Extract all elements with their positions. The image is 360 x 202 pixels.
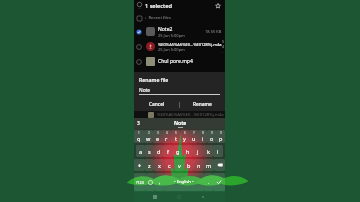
button[interactable]: Cancel xyxy=(134,99,179,110)
staticText: 54.97 KB xyxy=(222,39,225,54)
button[interactable]: Clipboard xyxy=(135,120,142,127)
button[interactable]: 1 xyxy=(134,130,144,143)
button[interactable]: Backspace xyxy=(214,159,225,171)
staticText: Chul pore.mp4 xyxy=(158,58,193,65)
staticText: • English • xyxy=(174,179,194,185)
other: Add to favourites xyxy=(215,3,221,9)
button[interactable]: • English • xyxy=(164,173,204,191)
staticText: 8 xyxy=(202,131,204,135)
button[interactable]: Chul pore.mp4 xyxy=(134,54,225,69)
staticText: %E0%A5%A6%E0…%E0128%j.m4a xyxy=(158,42,222,47)
staticText: 6 xyxy=(184,131,186,135)
staticText: w xyxy=(146,135,151,142)
button[interactable]: m xyxy=(204,159,214,171)
staticText: r xyxy=(165,135,168,142)
button[interactable]: Select all xyxy=(134,0,225,12)
staticText: k xyxy=(207,148,210,155)
button[interactable]: x xyxy=(154,159,164,171)
staticText: . xyxy=(208,179,210,185)
staticText: Note2 xyxy=(158,26,173,33)
staticText: c xyxy=(168,162,171,169)
staticText: 4 xyxy=(166,131,168,135)
staticText: 25 Jun 5:00pm xyxy=(158,33,185,38)
staticText: Cancel xyxy=(149,101,165,108)
staticText: 3 xyxy=(137,120,140,127)
staticText: g xyxy=(176,148,180,155)
button[interactable]: Enter xyxy=(213,173,225,191)
staticText: j xyxy=(197,148,199,155)
button[interactable]: 8 xyxy=(198,130,207,143)
staticText: l xyxy=(217,148,219,155)
staticText: › Recent files xyxy=(145,15,171,21)
button[interactable]: 0 xyxy=(216,130,225,143)
staticText: n xyxy=(197,162,201,169)
button[interactable]: Rename xyxy=(180,99,225,110)
button[interactable]: g xyxy=(173,145,183,157)
button[interactable]: k xyxy=(203,145,213,157)
staticText: u xyxy=(192,135,196,142)
staticText: 25 Jun 5:00pm xyxy=(158,47,185,52)
staticText: b xyxy=(187,162,191,169)
staticText: h xyxy=(186,148,190,155)
button[interactable]: Emoji xyxy=(146,173,155,191)
staticText: Note xyxy=(139,87,150,94)
staticText: s xyxy=(148,148,151,155)
staticText: m xyxy=(206,162,212,169)
button[interactable]: 4 xyxy=(162,130,171,143)
staticText: %E0%A5%A6%E0…%E0128%j.m4a xyxy=(157,112,224,118)
button[interactable]: Note2 xyxy=(134,24,225,39)
button[interactable]: 5 xyxy=(171,130,180,143)
button[interactable]: f xyxy=(163,145,173,157)
button[interactable]: z xyxy=(145,159,154,171)
staticText: Note xyxy=(174,120,187,127)
button[interactable]: %E0%A5%A6%E0…%E0128%j.m4a xyxy=(134,39,225,54)
staticText: , xyxy=(159,179,161,185)
staticText: t xyxy=(175,135,177,142)
button[interactable]: 6 xyxy=(180,130,189,143)
staticText: v xyxy=(178,162,181,169)
staticText: f xyxy=(167,148,169,155)
button[interactable]: 2 xyxy=(144,130,153,143)
button[interactable]: c xyxy=(164,159,174,171)
button[interactable]: Shift xyxy=(134,159,145,171)
button[interactable]: 9 xyxy=(207,130,216,143)
button[interactable]: 7 xyxy=(189,130,198,143)
staticText: 3 xyxy=(157,131,159,135)
button[interactable]: Back xyxy=(201,195,205,199)
staticText: Rename xyxy=(193,101,212,108)
staticText: q xyxy=(137,135,141,142)
button[interactable]: s xyxy=(145,145,154,157)
staticText: 1 xyxy=(138,131,140,135)
staticText: 2 xyxy=(148,131,150,135)
staticText: i xyxy=(202,135,204,142)
button[interactable]: 3 xyxy=(153,130,162,143)
staticText: e xyxy=(156,135,160,142)
button[interactable]: h xyxy=(183,145,193,157)
staticText: a xyxy=(139,148,143,155)
staticText: 5 xyxy=(175,131,177,135)
button[interactable]: Home xyxy=(177,195,181,199)
button[interactable]: d xyxy=(154,145,163,157)
staticText: 7 xyxy=(193,131,195,135)
button[interactable]: j xyxy=(193,145,203,157)
staticText: z xyxy=(148,162,151,169)
staticText: 18.55 KB xyxy=(205,29,222,34)
staticText: y xyxy=(183,135,186,142)
staticText: Rename file xyxy=(139,76,169,83)
staticText: p xyxy=(219,135,223,142)
button[interactable]: a xyxy=(136,145,145,157)
staticText: o xyxy=(210,135,214,142)
staticText: 14 xyxy=(138,7,141,10)
staticText: x xyxy=(158,162,161,169)
button[interactable]: ?123 xyxy=(134,173,146,191)
button[interactable]: l xyxy=(213,145,223,157)
staticText: 9 xyxy=(211,131,213,135)
button[interactable]: . xyxy=(204,173,213,191)
button[interactable]: , xyxy=(155,173,164,191)
button[interactable]: b xyxy=(184,159,194,171)
button[interactable]: n xyxy=(194,159,204,171)
staticText: ?123 xyxy=(136,180,144,185)
button[interactable]: › Recent files xyxy=(134,13,225,23)
button[interactable]: v xyxy=(174,159,184,171)
